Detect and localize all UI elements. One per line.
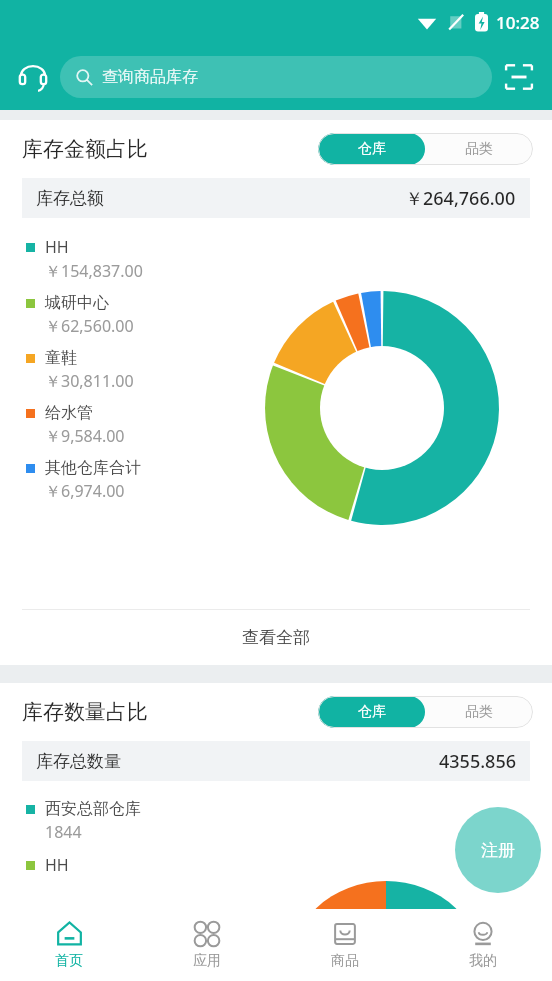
staticText: 商品 (331, 952, 359, 970)
button[interactable]: 仓库 (318, 133, 425, 165)
button[interactable]: 首页 (0, 909, 138, 981)
staticText: ￥264,766.00 (405, 186, 516, 211)
button[interactable]: 仓库 (318, 696, 425, 728)
button[interactable]: 扫码 (496, 54, 542, 100)
staticText: 童鞋 (45, 348, 77, 368)
staticText: 库存数量占比 (22, 699, 148, 725)
staticText: 库存金额占比 (22, 136, 148, 162)
staticText: 应用 (193, 952, 221, 970)
staticText: 首页 (55, 952, 83, 970)
staticText: ￥62,560.00 (45, 315, 134, 337)
staticText: ￥154,837.00 (45, 260, 143, 282)
staticText: HH (45, 236, 69, 258)
button[interactable]: 品类 (425, 133, 533, 165)
button[interactable]: 商品 (276, 909, 414, 981)
staticText: 品类 (465, 140, 493, 158)
staticText: ￥6,974.00 (45, 480, 125, 502)
staticText: 4355.856 (439, 749, 516, 774)
staticText: 城研中心 (45, 293, 109, 313)
staticText: 仓库 (358, 140, 386, 158)
button[interactable]: 注册 (455, 807, 541, 893)
button[interactable]: 查询商品库存 (60, 56, 492, 98)
button[interactable]: 客服 (10, 54, 56, 100)
staticText: 10:28 (496, 11, 540, 34)
button[interactable]: 查看全部 (0, 610, 552, 665)
staticText: 库存总数量 (36, 751, 121, 772)
staticText: 其他仓库合计 (45, 458, 141, 478)
staticText: 查询商品库存 (102, 67, 198, 87)
button[interactable]: 应用 (138, 909, 276, 981)
staticText: 库存总额 (36, 188, 104, 209)
staticText: 注册 (481, 840, 515, 861)
staticText: ￥30,811.00 (45, 370, 134, 392)
staticText: 我的 (469, 952, 497, 970)
staticText: 仓库 (358, 703, 386, 721)
staticText: 品类 (465, 703, 493, 721)
staticText: 查看全部 (242, 627, 310, 648)
staticText: 西安总部仓库 (45, 799, 141, 819)
staticText: 1844 (45, 821, 82, 843)
staticText: 给水管 (45, 403, 93, 423)
staticText: ￥9,584.00 (45, 425, 125, 447)
button[interactable]: 品类 (425, 696, 533, 728)
button[interactable]: 我的 (414, 909, 552, 981)
staticText: HH (45, 854, 69, 876)
